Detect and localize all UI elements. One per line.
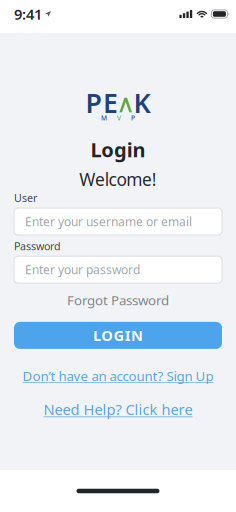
staticText: 9:41 <box>14 4 42 24</box>
button[interactable]: Enter your username or email <box>14 208 222 235</box>
staticText: Password <box>14 239 61 253</box>
staticText: P <box>131 113 135 122</box>
staticText: Welcome! <box>79 168 157 191</box>
staticText: Need Help? Click here <box>43 400 192 419</box>
staticText: V <box>117 113 121 122</box>
staticText: Enter your password <box>25 262 140 278</box>
staticText: Enter your username or email <box>25 213 192 229</box>
button[interactable]: Need Help? Click here <box>43 400 192 419</box>
staticText: K <box>133 85 150 120</box>
button[interactable]: Enter your password <box>14 256 222 283</box>
staticText: M <box>101 113 107 122</box>
staticText: P <box>86 85 102 120</box>
button[interactable]: Forgot Password <box>67 291 169 309</box>
button[interactable]: Don’t have an account? Sign Up <box>22 367 213 385</box>
staticText: E <box>103 85 118 120</box>
button[interactable]: LOGIN <box>14 322 222 349</box>
staticText: User <box>14 191 37 205</box>
staticText: Don’t have an account? Sign Up <box>22 367 213 385</box>
staticText: Login <box>90 136 146 163</box>
staticText: LOGIN <box>93 326 143 345</box>
staticText: Forgot Password <box>67 291 169 309</box>
